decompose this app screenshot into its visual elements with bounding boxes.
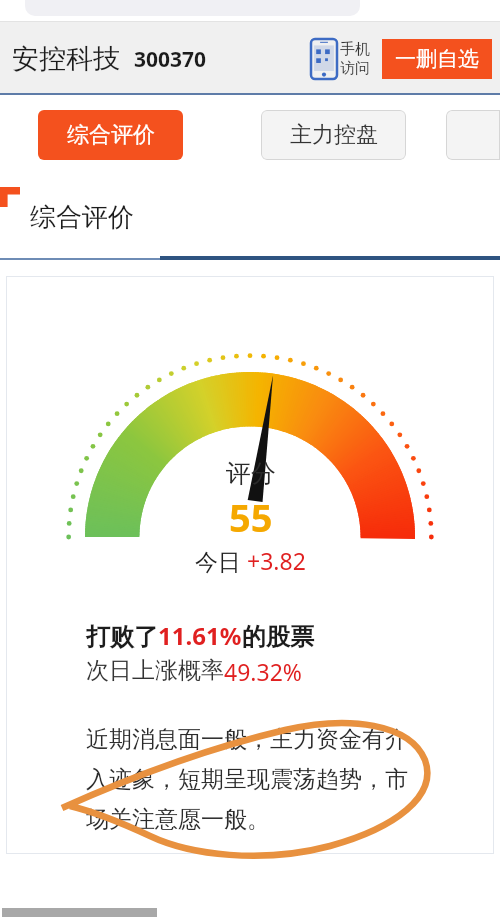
staticText: 主力控盘 (290, 121, 378, 149)
staticText: 11.61% (158, 619, 242, 652)
staticText: 评分 (226, 458, 276, 489)
staticText: 综合评价 (67, 121, 155, 149)
button[interactable]: 更多标签 (446, 110, 500, 160)
staticText: 访问 (340, 59, 370, 78)
staticText: 300370 (134, 45, 207, 74)
staticText: 手机 (340, 40, 370, 59)
button[interactable]: 评分 (6, 276, 494, 854)
staticText: 近期消息面一般，主力资金有介入迹象，短期呈现震荡趋势，市场关注意愿一般。 (86, 725, 422, 834)
staticText: 安控科技 (12, 42, 120, 76)
staticText: 今日 (195, 545, 247, 576)
staticText: 打败了 (86, 622, 158, 652)
button[interactable]: 手机访问 (309, 39, 372, 79)
staticText: 一删自选 (395, 46, 479, 72)
staticText: 49.32% (224, 656, 302, 687)
staticText: 55 (229, 491, 273, 543)
staticText: +3.82 (247, 545, 306, 576)
button[interactable]: 综合评价 (38, 110, 183, 160)
button[interactable]: 一删自选 (382, 39, 492, 79)
button[interactable]: 主力控盘 (261, 110, 406, 160)
staticText: 次日上涨概率 (86, 656, 224, 685)
staticText: 综合评价 (30, 201, 134, 234)
staticText: 的股票 (242, 622, 314, 652)
